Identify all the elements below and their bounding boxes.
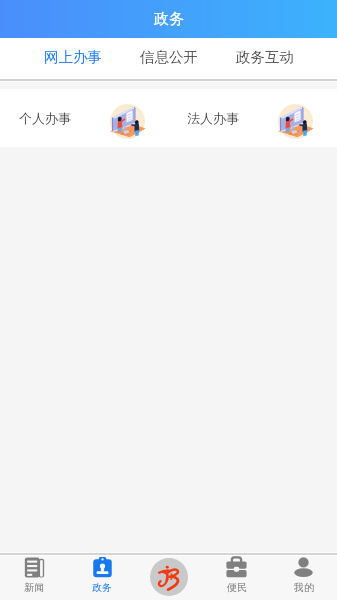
staticText: 信息公开 <box>140 48 198 66</box>
button[interactable]: 发布 <box>150 558 188 596</box>
staticText: 法人办事 <box>187 110 239 126</box>
button[interactable]: 政务互动 <box>217 38 313 79</box>
staticText: 政务 <box>92 581 112 594</box>
button[interactable]: 我的 <box>270 556 337 600</box>
staticText: 新闻 <box>24 581 44 594</box>
staticText: 网上办事 <box>44 48 102 66</box>
staticText: 便民 <box>227 581 247 594</box>
button[interactable]: 法人办事 <box>168 89 337 147</box>
staticText: 政务互动 <box>236 48 294 66</box>
button[interactable]: 政务 <box>68 556 136 600</box>
button[interactable]: 网上办事 <box>24 38 121 79</box>
staticText: 我的 <box>294 581 314 594</box>
staticText: 个人办事 <box>19 110 71 126</box>
button[interactable]: 个人办事 <box>0 89 168 147</box>
button[interactable]: 信息公开 <box>121 38 217 79</box>
button[interactable]: 便民 <box>203 556 270 600</box>
staticText: 政务 <box>154 10 184 29</box>
button[interactable]: 新闻 <box>0 556 68 600</box>
